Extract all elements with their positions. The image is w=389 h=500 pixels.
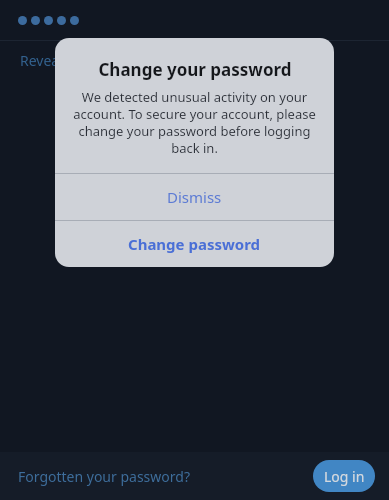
button[interactable]: Forgotten your password? — [18, 463, 190, 490]
button[interactable]: Change password — [55, 221, 334, 267]
button[interactable]: Log in — [313, 460, 375, 492]
button[interactable]: Dismiss — [55, 174, 334, 220]
staticText: Change your password — [98, 58, 292, 81]
staticText: Reveal — [20, 51, 63, 70]
staticText: We detected unusual activity on your acc… — [69, 88, 320, 157]
staticText: Dismiss — [167, 187, 222, 207]
staticText: Log in — [324, 467, 365, 486]
staticText: Forgotten your password? — [18, 467, 190, 486]
staticText: Change password — [128, 234, 261, 254]
button[interactable]: Reveal — [18, 49, 65, 72]
